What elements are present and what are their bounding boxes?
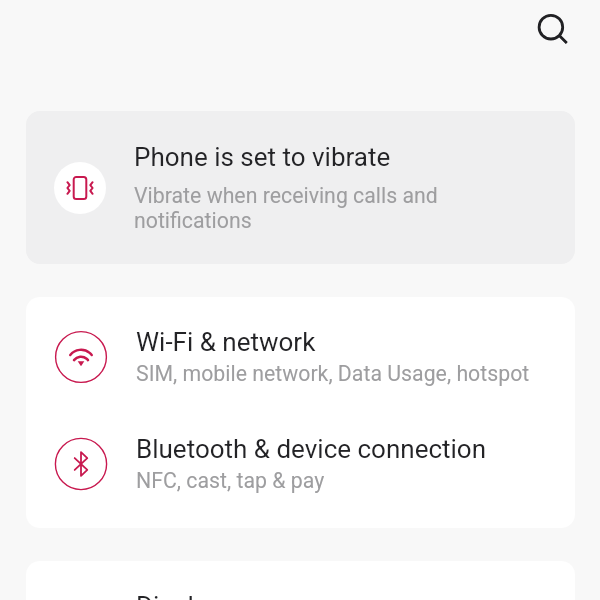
staticText: Vibrate when receiving calls and <box>134 182 438 209</box>
button[interactable]: Display <box>26 568 575 600</box>
staticText: SIM, mobile network, Data Usage, hotspot <box>136 360 530 387</box>
staticText: Bluetooth & device connection <box>136 434 487 464</box>
button[interactable]: Wi-Fi & network <box>26 304 575 411</box>
staticText: Phone is set to vibrate <box>134 142 391 172</box>
staticText: Display <box>136 591 220 600</box>
button[interactable]: Search <box>526 2 574 50</box>
staticText: notifications <box>134 207 252 234</box>
button[interactable]: Phone is set to vibrate <box>26 111 575 264</box>
button[interactable]: Bluetooth & device connection <box>26 411 575 518</box>
staticText: Wi-Fi & network <box>136 327 316 357</box>
staticText: NFC, cast, tap & pay <box>136 467 325 494</box>
